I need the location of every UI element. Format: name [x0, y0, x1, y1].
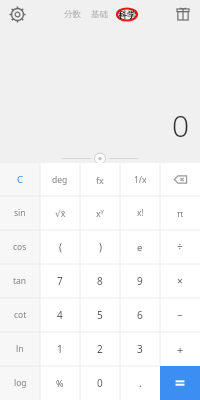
button[interactable]: Settings	[6, 3, 28, 25]
button[interactable]: ln	[0, 332, 40, 366]
staticText: xy	[96, 207, 104, 219]
button[interactable]: Equals	[160, 366, 200, 400]
button[interactable]: 5	[80, 298, 120, 332]
staticText: cot	[14, 309, 27, 321]
button[interactable]: Backspace	[160, 163, 200, 196]
button[interactable]: fx	[80, 163, 120, 196]
button[interactable]: −	[160, 298, 200, 332]
staticText: 3	[137, 342, 143, 356]
staticText: √x̄	[55, 207, 66, 219]
button[interactable]: cot	[0, 298, 40, 332]
button[interactable]: 4	[40, 298, 80, 332]
button[interactable]: 8	[80, 264, 120, 298]
staticText: .	[139, 376, 142, 390]
staticText: 0	[172, 105, 190, 146]
button[interactable]: %	[40, 366, 80, 400]
button[interactable]: e	[120, 230, 160, 264]
button[interactable]: 0	[80, 366, 120, 400]
staticText: ×	[177, 274, 183, 288]
staticText: cos	[13, 241, 27, 253]
staticText: 科学	[118, 9, 136, 20]
button[interactable]: Gift	[172, 3, 194, 25]
staticText: 1/x	[134, 174, 147, 186]
staticText: (	[59, 240, 62, 254]
button[interactable]: 6	[120, 298, 160, 332]
staticText: 6	[137, 308, 143, 322]
button[interactable]: log	[0, 366, 40, 400]
staticText: 基础	[91, 9, 108, 20]
staticText: ln	[16, 343, 24, 355]
staticText: 分数	[64, 9, 81, 20]
button[interactable]: +	[160, 332, 200, 366]
staticText: +	[177, 342, 184, 357]
button[interactable]: 1/x	[120, 163, 160, 196]
staticText: 5	[97, 308, 103, 322]
button[interactable]: 9	[120, 264, 160, 298]
staticText: fx	[96, 174, 104, 186]
button[interactable]: xy	[80, 196, 120, 230]
button[interactable]: 分数	[59, 5, 86, 24]
staticText: )	[99, 240, 102, 254]
button[interactable]: cos	[0, 230, 40, 264]
button[interactable]: 科学	[113, 5, 141, 24]
button[interactable]: 3	[120, 332, 160, 366]
button[interactable]: ÷	[160, 230, 200, 264]
button[interactable]: ×	[160, 264, 200, 298]
staticText: 9	[137, 274, 143, 288]
staticText: deg	[52, 174, 68, 186]
button[interactable]: 2	[80, 332, 120, 366]
button[interactable]: (	[40, 230, 80, 264]
staticText: sin	[14, 207, 26, 219]
button[interactable]: x!	[120, 196, 160, 230]
staticText: x!	[137, 207, 144, 219]
button[interactable]: 7	[40, 264, 80, 298]
button[interactable]: C	[0, 163, 40, 196]
staticText: 1	[57, 342, 63, 356]
button[interactable]: sin	[0, 196, 40, 230]
staticText: π	[177, 207, 184, 220]
button[interactable]: 1	[40, 332, 80, 366]
staticText: C	[17, 173, 24, 186]
staticText: 7	[57, 274, 63, 288]
staticText: 2	[97, 342, 103, 356]
button[interactable]: )	[80, 230, 120, 264]
button[interactable]: π	[160, 196, 200, 230]
button[interactable]: 基础	[86, 5, 113, 24]
staticText: %	[56, 377, 64, 389]
button[interactable]: √x̄	[40, 196, 80, 230]
staticText: ÷	[177, 240, 183, 254]
staticText: 0	[97, 376, 103, 390]
staticText: 8	[97, 274, 103, 288]
staticText: 4	[57, 308, 63, 322]
staticText: tan	[13, 275, 27, 287]
button[interactable]: .	[120, 366, 160, 400]
staticText: e	[137, 241, 143, 254]
button[interactable]: tan	[0, 264, 40, 298]
staticText: log	[14, 377, 27, 389]
staticText: −	[177, 308, 183, 322]
button[interactable]: deg	[40, 163, 80, 196]
